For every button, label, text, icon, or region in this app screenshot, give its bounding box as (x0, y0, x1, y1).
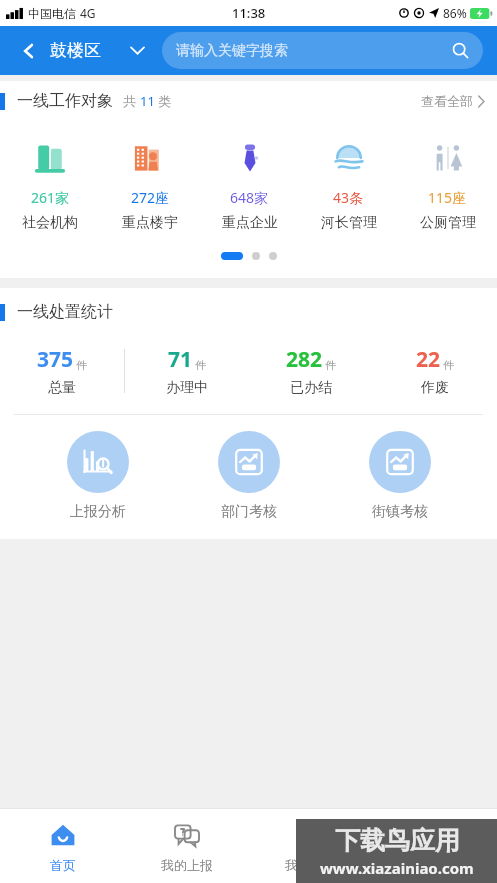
staticText: 11 (140, 92, 155, 110)
staticText: 我的服务 (285, 857, 337, 873)
staticText: 首页 (50, 857, 76, 873)
button[interactable]: 上报分析 (22, 431, 173, 521)
staticText: 648家 (230, 188, 269, 207)
button[interactable]: 115座 (398, 135, 497, 234)
staticText: 4G (80, 5, 96, 21)
button[interactable]: 首页 (0, 809, 125, 883)
staticText: 共 (123, 93, 136, 109)
staticText: 86% (443, 5, 467, 21)
button[interactable]: 街镇考核 (324, 431, 475, 521)
staticText: 件 (76, 358, 87, 372)
staticText: 261家 (31, 188, 70, 207)
staticText: 272座 (131, 188, 170, 207)
staticText: 重点企业 (222, 214, 278, 232)
staticText: 中国电信 (28, 6, 76, 21)
button[interactable]: 282 (249, 345, 373, 397)
button[interactable]: 我的服务 (249, 809, 373, 883)
staticText: 375 (37, 345, 74, 374)
staticText: 22 (416, 345, 441, 374)
staticText: 请输入关键字搜索 (176, 42, 452, 60)
button[interactable]: 71 (125, 345, 249, 397)
staticText: 作废 (421, 379, 449, 397)
button[interactable]: 261家 (0, 135, 100, 234)
staticText: 社会机构 (22, 214, 78, 232)
staticText: 下载鸟应用 (335, 825, 460, 856)
button[interactable]: Back (14, 36, 44, 66)
staticText: 查看全部 (421, 93, 473, 109)
button[interactable]: 43条 (299, 135, 398, 234)
staticText: 43条 (333, 188, 364, 207)
staticText: 街镇考核 (372, 503, 428, 521)
button[interactable]: 鼓楼区 (44, 40, 150, 61)
button[interactable]: 648家 (200, 135, 299, 234)
staticText: 115座 (428, 188, 467, 207)
button[interactable]: 22 (373, 345, 497, 397)
button[interactable]: 我的上报 (125, 809, 249, 883)
staticText: 类 (158, 93, 171, 109)
button[interactable]: 查看全部 (409, 93, 497, 109)
staticText: 河长管理 (321, 214, 377, 232)
staticText: www.xiazainiao.com (320, 858, 474, 878)
staticText: 鼓楼区 (50, 40, 101, 61)
staticText: 件 (325, 358, 336, 372)
staticText: 282 (286, 345, 323, 374)
staticText: 一线工作对象 (17, 91, 113, 111)
staticText: 71 (168, 345, 193, 374)
staticText: 部门考核 (221, 503, 277, 521)
staticText: 一线处置统计 (17, 302, 113, 322)
button[interactable]: 272座 (100, 135, 200, 234)
staticText: 办理中 (166, 379, 208, 397)
staticText: 重点楼宇 (122, 214, 178, 232)
staticText: 上报分析 (70, 503, 126, 521)
staticText: 件 (195, 358, 206, 372)
staticText: 我的上报 (161, 857, 213, 873)
staticText: 总量 (48, 379, 76, 397)
button[interactable]: 375 (0, 345, 124, 397)
staticText: 11:38 (232, 4, 266, 22)
staticText: 件 (443, 358, 454, 372)
staticText: 已办结 (290, 379, 332, 397)
staticText: 公厕管理 (420, 214, 476, 232)
button[interactable]: 请输入关键字搜索 (162, 32, 483, 69)
button[interactable]: 部门考核 (173, 431, 324, 521)
